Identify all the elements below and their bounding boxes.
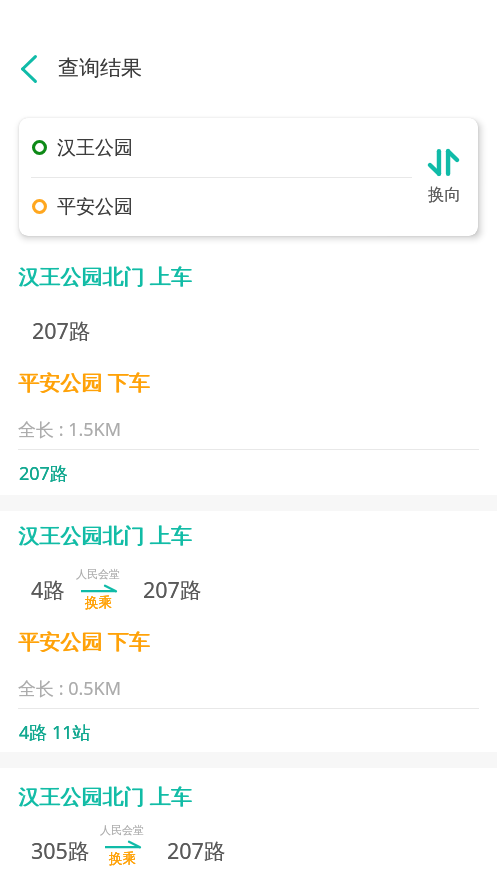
staticText: 汉王公园北门 上车 [18,521,192,550]
button[interactable]: 汉王公园北门 上车 [0,510,497,754]
staticText: 换乘 [85,594,112,611]
staticText: 207路 [167,836,226,865]
staticText: 汉王公园北门 上车 [19,262,193,291]
staticText: 换乘 [109,850,136,867]
staticText: 全长 : 1.5KM [18,417,122,442]
staticText: 汉王公园北门 上车 [19,521,193,550]
staticText: 换乘 [85,594,112,611]
staticText: 207路 [167,836,226,865]
staticText: 换向 [428,184,461,205]
staticText: 查询结果 [58,55,142,81]
staticText: 汉王公园 [57,136,133,160]
staticText: 换乘 [109,850,136,867]
staticText: 人民会堂 [76,567,120,581]
staticText: 查询结果 [58,55,142,81]
staticText: 305路 [31,836,90,865]
staticText: 平安公园 下车 [18,368,150,397]
staticText: 305路 [31,836,90,865]
staticText: 全长 : 0.5KM [18,676,122,701]
staticText: 换向 [428,184,461,205]
staticText: 汉王公园北门 上车 [19,782,193,811]
staticText: 4路 11站 [19,720,91,745]
staticText: 207路 [19,461,68,486]
staticText: 4路 [31,575,65,604]
staticText: 207路 [32,316,91,345]
button[interactable]: 汉王公园北门 上车 [0,251,497,495]
staticText: 汉王公园北门 上车 [18,782,192,811]
staticText: 207路 [143,575,202,604]
staticText: 平安公园 下车 [19,627,151,656]
staticText: 207路 [32,316,91,345]
staticText: 207路 [143,575,202,604]
staticText: 平安公园 下车 [19,368,151,397]
staticText: 平安公园 [57,195,133,219]
button[interactable]: 换向 [417,118,471,236]
staticText: 平安公园 下车 [18,627,150,656]
staticText: 汉王公园北门 上车 [18,262,192,291]
button[interactable]: 汉王公园北门 上车 [0,771,497,883]
staticText: 平安公园 [57,195,133,219]
staticText: 4路 11站 [19,720,91,745]
staticText: 4路 [31,575,65,604]
staticText: 汉王公园 [57,136,133,160]
button[interactable]: Back [13,53,45,85]
staticText: 人民会堂 [100,823,144,837]
staticText: 207路 [19,461,68,486]
